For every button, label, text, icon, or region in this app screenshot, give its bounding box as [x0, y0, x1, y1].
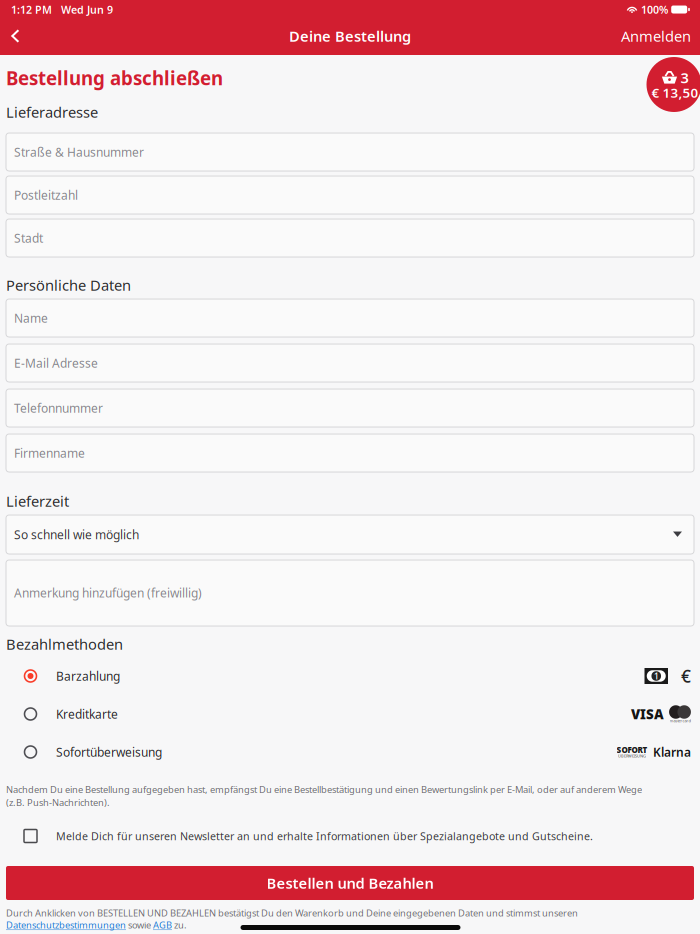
- staticText: 3: [680, 68, 688, 87]
- staticText: Bezahlmethoden: [6, 634, 123, 654]
- staticText: Durch Anklicken von BESTELLEN UND BEZAHL…: [6, 907, 578, 919]
- staticText: Lieferadresse: [6, 102, 98, 122]
- staticText: mastercard: [669, 718, 690, 723]
- button[interactable]: Zurück: [0, 19, 44, 53]
- button[interactable]: Postleitzahl: [6, 176, 694, 214]
- staticText: Bestellen und Bezahlen: [266, 873, 433, 893]
- button[interactable]: Straße & Hausnummer: [6, 133, 694, 171]
- staticText: Straße & Hausnummer: [14, 144, 144, 160]
- staticText: Persönliche Daten: [6, 275, 131, 295]
- button[interactable]: Telefonnummer: [6, 389, 694, 427]
- staticText: 1: [654, 670, 659, 682]
- staticText: Melde Dich für unseren Newsletter an und…: [56, 829, 593, 843]
- button[interactable]: Stadt: [6, 219, 694, 257]
- staticText: Firmenname: [14, 445, 85, 461]
- staticText: Anmelden: [621, 26, 691, 46]
- button[interactable]: AGB: [153, 919, 172, 931]
- staticText: Wed Jun 9: [61, 2, 113, 17]
- button[interactable]: Kreditkarte: [6, 695, 694, 733]
- button[interactable]: Anmelden: [580, 19, 700, 53]
- staticText: Name: [14, 310, 48, 326]
- staticText: € 13,50: [651, 84, 698, 101]
- button[interactable]: Bestellen und Bezahlen: [6, 866, 694, 900]
- staticText: Bestellung abschließen: [6, 66, 223, 90]
- staticText: Nachdem Du eine Bestellung aufgegeben ha…: [6, 783, 642, 796]
- staticText: (z.B. Push-Nachrichten).: [6, 796, 110, 809]
- button[interactable]: E-Mail Adresse: [6, 344, 694, 382]
- staticText: Telefonnummer: [14, 400, 103, 416]
- staticText: 100%: [641, 2, 668, 17]
- staticText: Anmerkung hinzufügen (freiwillig): [14, 585, 202, 601]
- staticText: Barzahlung: [56, 668, 120, 684]
- button[interactable]: Anmerkung hinzufügen (freiwillig): [6, 560, 694, 626]
- button[interactable]: Melde Dich für unseren Newsletter an und…: [6, 824, 694, 848]
- staticText: Datenschutzbestimmungen: [6, 919, 126, 931]
- button[interactable]: Warenkorb, 3 Artikel, 13,50 Euro: [646, 57, 700, 112]
- staticText: Deine Bestellung: [289, 26, 411, 46]
- staticText: ÜBERWEISUNG: [618, 753, 646, 759]
- staticText: VISA: [631, 705, 664, 723]
- button[interactable]: So schnell wie möglich: [6, 515, 694, 554]
- staticText: Postleitzahl: [14, 187, 78, 203]
- staticText: AGB: [153, 919, 172, 931]
- button[interactable]: Datenschutzbestimmungen: [6, 919, 126, 931]
- staticText: Sofortüberweisung: [56, 744, 162, 760]
- staticText: Klarna: [653, 744, 691, 760]
- staticText: zu.: [172, 919, 187, 931]
- staticText: Stadt: [14, 230, 43, 246]
- staticText: Lieferzeit: [6, 491, 69, 511]
- staticText: E-Mail Adresse: [14, 355, 98, 371]
- button[interactable]: Name: [6, 299, 694, 337]
- staticText: 1:12 PM: [11, 2, 52, 17]
- staticText: So schnell wie möglich: [14, 526, 139, 542]
- button[interactable]: Firmenname: [6, 434, 694, 472]
- staticText: sowie: [126, 919, 153, 931]
- button[interactable]: Barzahlung: [6, 657, 694, 695]
- button[interactable]: Sofortüberweisung: [6, 733, 694, 771]
- staticText: €: [681, 664, 691, 687]
- staticText: Kreditkarte: [56, 706, 118, 722]
- staticText: SOFORT: [616, 745, 647, 755]
